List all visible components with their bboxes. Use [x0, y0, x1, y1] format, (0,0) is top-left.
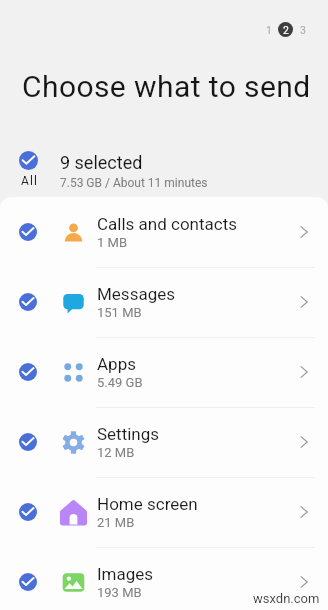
staticText: 7.53 GB / About 11 minutes [60, 176, 208, 190]
staticText: 5.49 GB [97, 375, 143, 390]
staticText: Home screen [97, 494, 198, 514]
staticText: 12 MB [97, 445, 135, 460]
button[interactable]: Deselect Home screen [0, 477, 328, 547]
button[interactable]: 2 [278, 22, 293, 37]
button[interactable]: Deselect Settings [0, 407, 328, 477]
staticText: 193 MB [97, 585, 142, 600]
button[interactable]: Deselect Settings [0, 407, 55, 477]
button[interactable]: Deselect Messages [0, 267, 55, 337]
button[interactable]: Deselect Calls and contacts [0, 197, 328, 267]
button[interactable]: Deselect Images [0, 547, 55, 610]
button[interactable]: Deselect Apps [0, 337, 328, 407]
staticText: 1 [266, 24, 272, 36]
staticText: Apps [97, 354, 136, 374]
staticText: 2 [283, 24, 289, 36]
staticText: Images [97, 564, 154, 584]
staticText: 9 selected [60, 152, 143, 173]
staticText: 1 MB [97, 235, 127, 250]
button[interactable]: Deselect Home screen [0, 477, 55, 547]
staticText: 3 [300, 24, 306, 36]
staticText: Settings [97, 424, 160, 444]
button[interactable]: Deselect Messages [0, 267, 328, 337]
button[interactable]: Select all [0, 144, 328, 200]
staticText: Messages [97, 284, 175, 304]
staticText: Choose what to send [22, 69, 311, 104]
button[interactable]: 1 [261, 22, 276, 37]
button[interactable]: Deselect Images [0, 547, 328, 610]
staticText: wsxdn.com [253, 591, 320, 606]
staticText: All [21, 174, 38, 188]
staticText: 21 MB [97, 515, 135, 530]
staticText: 151 MB [97, 305, 142, 320]
button[interactable]: Select all [0, 144, 56, 200]
button[interactable]: Deselect Calls and contacts [0, 197, 55, 267]
button[interactable]: 3 [295, 22, 310, 37]
button[interactable]: Deselect Apps [0, 337, 55, 407]
staticText: Calls and contacts [97, 214, 238, 234]
